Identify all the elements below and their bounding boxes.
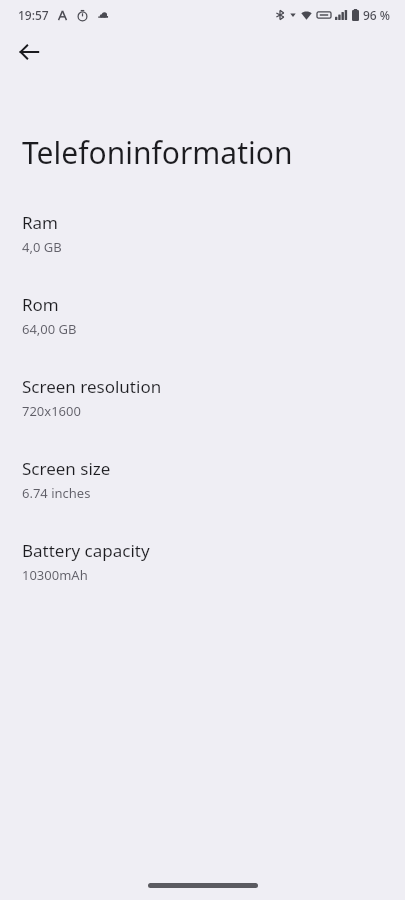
staticText: 6.74 inches xyxy=(22,484,91,502)
staticText: Rom xyxy=(22,293,59,316)
staticText: Screen size xyxy=(22,457,111,480)
staticText: 10300mAh xyxy=(22,566,88,584)
button[interactable]: Back xyxy=(10,33,48,71)
staticText: 19:57 xyxy=(18,7,49,23)
staticText: Ram xyxy=(22,211,59,234)
staticText: Battery capacity xyxy=(22,539,150,562)
staticText: 64,00 GB xyxy=(22,320,77,338)
staticText: 720x1600 xyxy=(22,402,81,420)
button[interactable]: Ram xyxy=(0,211,405,256)
button[interactable]: Screen size xyxy=(0,457,405,502)
button[interactable]: Rom xyxy=(0,293,405,338)
staticText: Telefoninformation xyxy=(22,132,293,173)
staticText: 4,0 GB xyxy=(22,238,62,256)
staticText: Screen resolution xyxy=(22,375,162,398)
button[interactable]: Screen resolution xyxy=(0,375,405,420)
staticText: 96 % xyxy=(363,7,391,23)
button[interactable]: Battery capacity xyxy=(0,539,405,584)
